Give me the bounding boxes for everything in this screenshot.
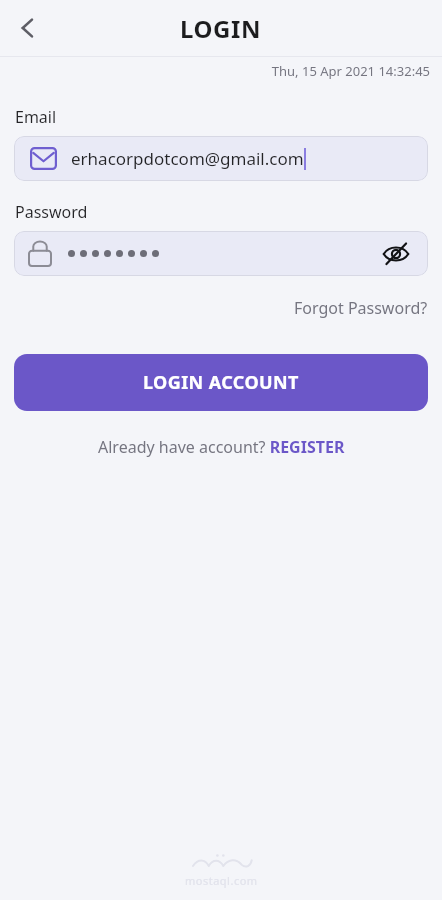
button[interactable]: LOGIN ACCOUNT: [14, 354, 428, 411]
button[interactable]: Back: [0, 0, 56, 56]
staticText: Thu, 15 Apr 2021 14:32:45: [0, 62, 430, 80]
staticText: LOGIN: [180, 12, 262, 45]
button[interactable]: Show password: [374, 232, 418, 276]
button[interactable]: Show password: [14, 231, 428, 276]
staticText: Forgot Password?: [294, 297, 428, 319]
staticText: Email: [15, 106, 57, 128]
staticText: LOGIN ACCOUNT: [143, 370, 299, 395]
staticText: Already have account? REGISTER: [98, 436, 345, 458]
staticText: Password: [15, 201, 88, 223]
staticText: mostaql.com: [185, 873, 258, 888]
button[interactable]: erhacorpdotcom@gmail.com: [14, 136, 428, 181]
staticText: erhacorpdotcom@gmail.com: [71, 147, 304, 170]
button[interactable]: Already have account? REGISTER: [90, 432, 353, 462]
button[interactable]: Forgot Password?: [280, 293, 442, 323]
